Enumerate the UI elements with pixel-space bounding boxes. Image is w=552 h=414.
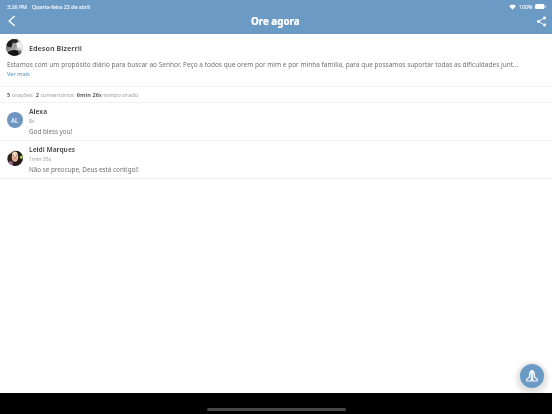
- button[interactable]: Share: [530, 13, 552, 29]
- staticText: 100%: [519, 3, 533, 10]
- staticText: Não se preocupe, Deus está contigo!!: [29, 165, 139, 174]
- staticText: AL: [11, 116, 19, 124]
- staticText: 3:26 PM: [7, 3, 27, 10]
- button[interactable]: Edeson Bizerril: [0, 34, 552, 86]
- button[interactable]: Leidi Marques: [0, 141, 552, 178]
- staticText: Edeson Bizerril: [29, 43, 82, 53]
- staticText: 1min 35s: [29, 155, 52, 162]
- button[interactable]: Ver mais: [7, 70, 30, 78]
- staticText: Ore agora: [251, 15, 300, 28]
- button[interactable]: AL: [0, 103, 552, 140]
- staticText: Leidi Marques: [29, 145, 76, 154]
- staticText: Quarta-feira 22 de abril: [32, 3, 90, 10]
- staticText: Estamos com um propósito diário para bus…: [7, 60, 519, 69]
- staticText: 8s: [29, 117, 35, 124]
- staticText: Alexa: [29, 107, 48, 116]
- button[interactable]: Back: [0, 13, 22, 29]
- button[interactable]: Pray now: [520, 364, 544, 388]
- staticText: 5 orações 2 comentários 6min 26s tempo o…: [7, 91, 139, 99]
- staticText: God bless you!: [29, 127, 73, 136]
